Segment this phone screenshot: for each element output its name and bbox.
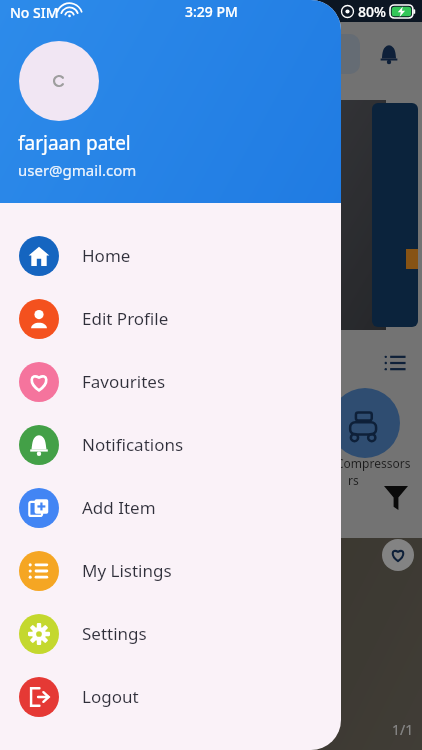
staticText: 1/1 <box>392 720 414 739</box>
staticText: 3:29 PM <box>185 2 238 21</box>
staticText: rs <box>348 472 359 488</box>
staticText: Settings <box>82 622 147 645</box>
staticText: farjaan patel <box>18 130 131 156</box>
staticText: Edit Profile <box>82 307 169 330</box>
staticText: Notifications <box>82 433 184 456</box>
staticText: My Listings <box>82 559 172 582</box>
button[interactable]: Settings <box>0 602 341 665</box>
button[interactable]: Home <box>0 224 341 287</box>
button[interactable]: Favourites <box>0 350 341 413</box>
staticText: Home <box>82 244 131 267</box>
staticText: Add Item <box>82 496 156 519</box>
staticText: 80% <box>358 2 386 21</box>
staticText: No SIM <box>10 3 59 22</box>
staticText: user@gmail.com <box>18 160 137 180</box>
button[interactable]: Logout <box>0 665 341 728</box>
button[interactable]: My Listings <box>0 539 341 602</box>
button[interactable]: Notifications <box>0 413 341 476</box>
staticText: Compressors <box>336 455 411 471</box>
staticText: Logout <box>82 685 139 708</box>
button[interactable]: Edit Profile <box>0 287 341 350</box>
button[interactable]: Add Item <box>0 476 341 539</box>
staticText: Favourites <box>82 370 166 393</box>
